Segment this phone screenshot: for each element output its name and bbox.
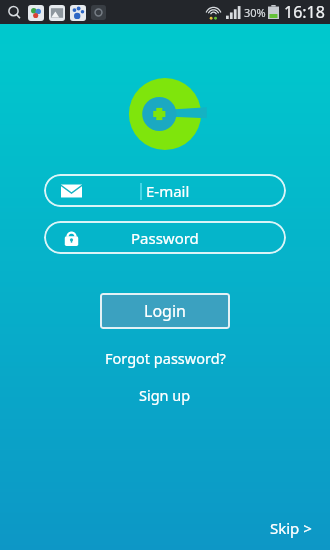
button[interactable]: Email (44, 174, 286, 207)
staticText: 30% (244, 5, 266, 20)
staticText: Skip > (270, 518, 312, 538)
button[interactable]: Skip > (264, 514, 318, 542)
staticText: Login (144, 300, 186, 322)
staticText: Password (131, 228, 199, 248)
button[interactable]: Login (100, 293, 230, 329)
staticText: Forgot password? (105, 348, 226, 368)
button[interactable]: Sign up (131, 383, 199, 407)
staticText: Sign up (139, 385, 191, 405)
other: Email (61, 182, 82, 200)
button[interactable]: Forgot password? (97, 346, 234, 370)
other: Password (61, 229, 82, 247)
staticText: 16:18 (284, 1, 325, 23)
button[interactable]: Password (44, 221, 286, 254)
staticText: E-mail (146, 181, 190, 201)
other: App logo (127, 76, 203, 152)
